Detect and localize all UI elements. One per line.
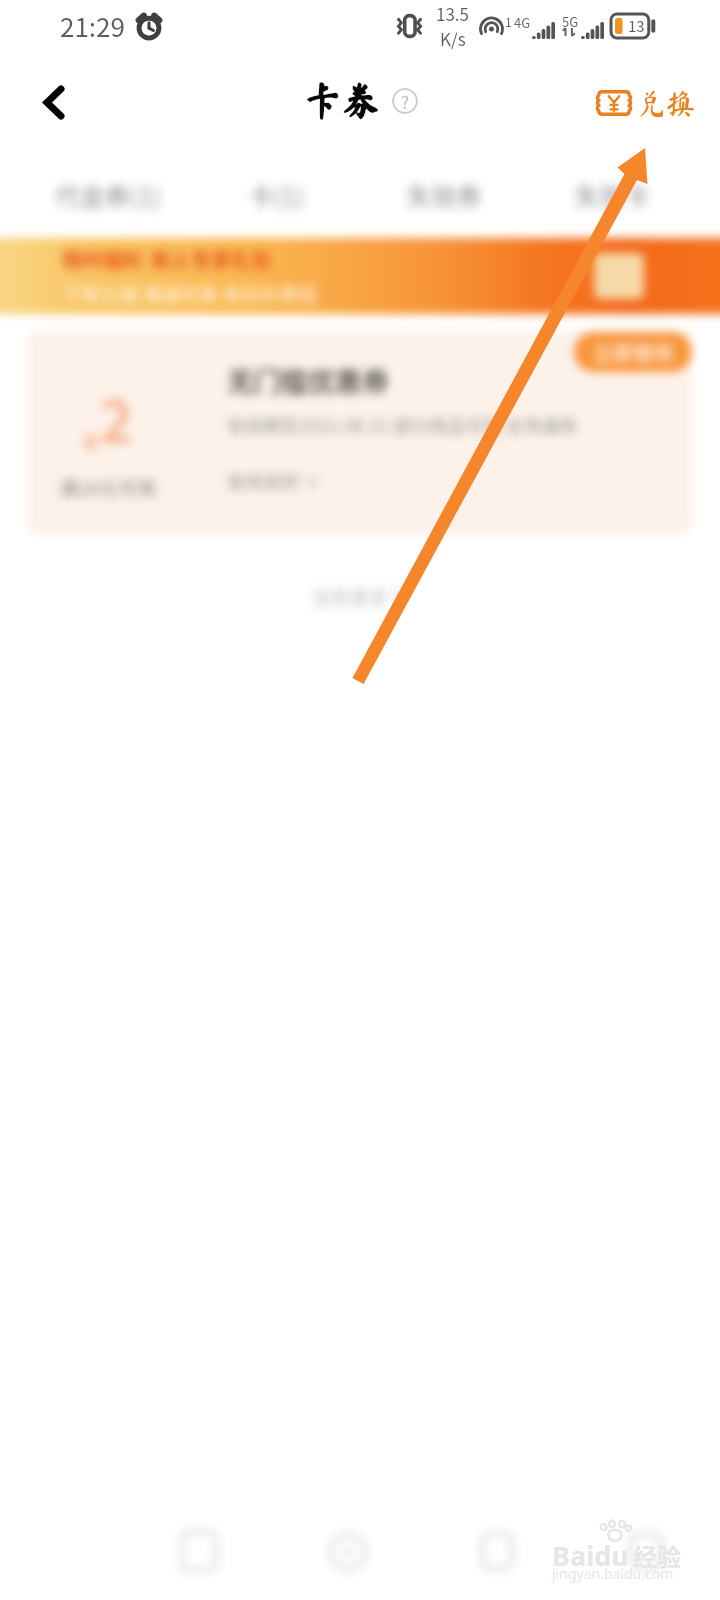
staticText: 使用规则 ∨ (227, 468, 322, 494)
staticText: 5G (562, 12, 579, 31)
button[interactable]: ¥ (28, 330, 692, 535)
button[interactable]: 限时福利 新人专享礼包 (0, 238, 720, 314)
staticText: 4G (514, 13, 531, 32)
button[interactable]: 失效券 (360, 152, 528, 238)
staticText: 限时福利 新人专享礼包 (62, 245, 272, 274)
button[interactable]: 失效卡 (528, 152, 696, 238)
staticText: 满20元可用 (59, 474, 157, 502)
staticText: 1 (505, 13, 512, 30)
button[interactable]: 卡(1) (192, 152, 360, 238)
button[interactable]: Profile (571, 1504, 720, 1600)
staticText: 有效期至2021.08.31 部分商品可用 全场通用 (227, 412, 577, 438)
staticText: K/s (440, 26, 466, 51)
button[interactable]: 代金券(1) (24, 152, 192, 238)
staticText: 13.5 (436, 1, 470, 26)
button[interactable]: Help (392, 88, 418, 114)
staticText: 卡(1) (248, 177, 304, 213)
button[interactable]: Back (24, 72, 84, 132)
staticText: jingyan.baidu.com (552, 1564, 674, 1583)
staticText: 代金券(1) (55, 177, 161, 213)
button[interactable]: 兑换 (592, 82, 700, 123)
staticText: ? (401, 89, 410, 114)
staticText: 失效卡 (574, 177, 650, 213)
staticText: 21:29 (60, 7, 125, 45)
button[interactable]: Messages (422, 1504, 571, 1600)
button[interactable]: 立即使用 (574, 332, 692, 372)
staticText: 经验 (633, 1538, 681, 1573)
staticText: 下单立减 满减优惠 券后价更低 (62, 280, 318, 308)
staticText: 兑换 (637, 88, 696, 117)
staticText: Baidu (552, 1537, 629, 1574)
staticText: 没有更多了 (312, 583, 408, 611)
staticText: 立即使用 (593, 338, 673, 367)
staticText: ¥ (83, 422, 99, 460)
staticText: 2 (99, 376, 134, 460)
staticText: 卡券 (303, 82, 380, 120)
staticText: 失效券 (406, 177, 482, 213)
staticText: 无门槛优惠券 (227, 361, 389, 400)
staticText: 13 (628, 15, 645, 37)
